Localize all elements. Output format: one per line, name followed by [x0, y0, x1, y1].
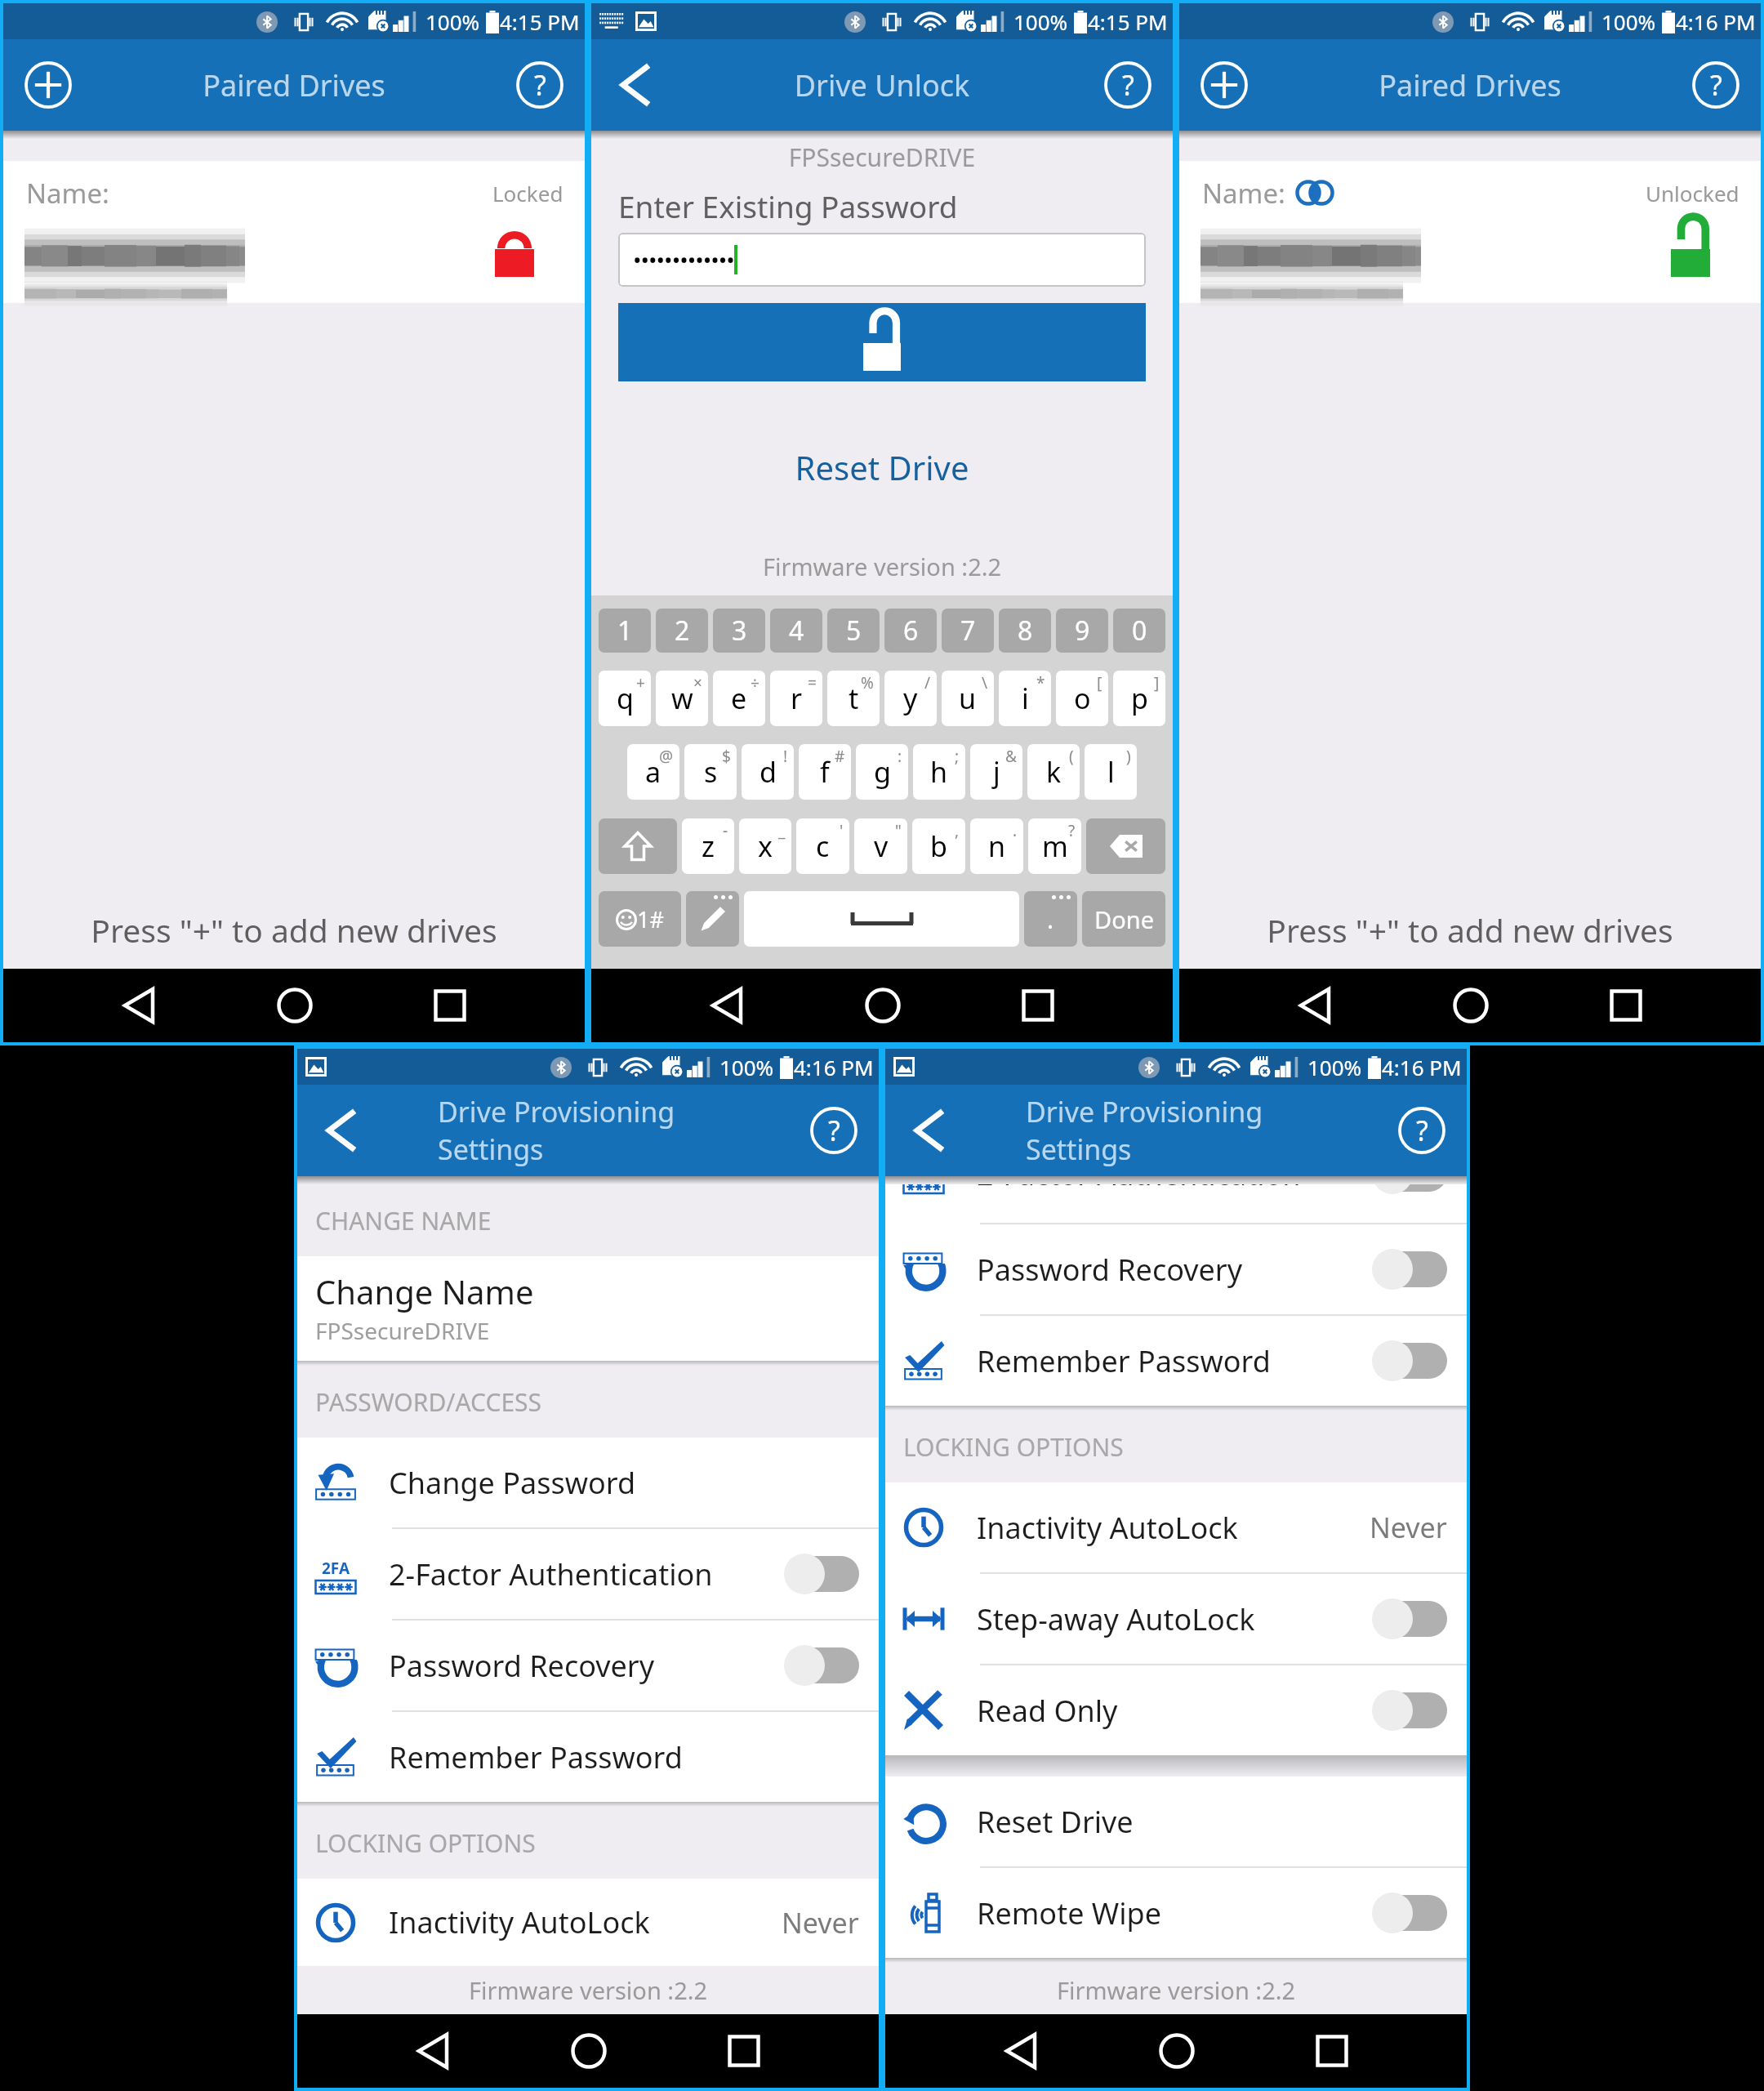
button[interactable]: Password Recovery [297, 1621, 879, 1712]
button[interactable]: Back [902, 1102, 959, 1159]
button[interactable]: 2 [656, 609, 708, 653]
button[interactable]: a [627, 744, 679, 800]
button[interactable]: Remember Password [885, 1316, 1467, 1406]
button[interactable]: Remember Password [297, 1712, 879, 1802]
button[interactable]: Back [94, 969, 184, 1042]
staticText: + [636, 672, 645, 693]
button[interactable]: Help [1687, 56, 1744, 114]
staticText: ' [840, 820, 844, 841]
staticText: s [704, 753, 718, 791]
button[interactable]: Inactivity AutoLock [885, 1482, 1467, 1574]
staticText: Locked [492, 179, 563, 207]
button[interactable]: 1# [599, 891, 681, 947]
button[interactable]: Backspace [1086, 818, 1165, 874]
button[interactable]: e [713, 671, 765, 726]
button[interactable]: Reset Drive [591, 445, 1173, 489]
staticText: 1# [637, 904, 664, 934]
button[interactable]: o [1056, 671, 1108, 726]
button[interactable]: Read Only [885, 1665, 1467, 1755]
button[interactable]: z [682, 818, 734, 874]
staticText: LOCKING OPTIONS [903, 1430, 1124, 1464]
button[interactable]: Back [608, 56, 665, 114]
button[interactable]: Step-away AutoLock [885, 1574, 1467, 1665]
button[interactable]: Recents [1581, 969, 1671, 1042]
button[interactable]: n [970, 818, 1023, 874]
button[interactable]: 4 [770, 609, 822, 653]
button[interactable]: Help [1099, 56, 1156, 114]
staticText: 5 [846, 613, 862, 649]
button[interactable]: Back [314, 1102, 371, 1159]
button[interactable]: Remote Wipe [885, 1868, 1467, 1958]
button[interactable]: Recents [405, 969, 495, 1042]
button[interactable]: 0 [1113, 609, 1165, 653]
button[interactable]: h [913, 744, 965, 800]
button[interactable]: Home [1426, 969, 1516, 1042]
button[interactable]: k [1027, 744, 1080, 800]
button[interactable]: Password Recovery [885, 1224, 1467, 1316]
button[interactable]: Home [544, 2014, 634, 2088]
button[interactable]: 2FA [297, 1529, 879, 1621]
button[interactable]: s [684, 744, 737, 800]
staticText: Remember Password [977, 1341, 1271, 1381]
staticText: Inactivity AutoLock [977, 1508, 1238, 1548]
button[interactable]: Space [744, 891, 1019, 947]
button[interactable]: 7 [942, 609, 994, 653]
button[interactable]: Back [388, 2014, 478, 2088]
button[interactable]: Change Name [297, 1256, 879, 1361]
button[interactable]: Back [976, 2014, 1066, 2088]
button[interactable]: m [1028, 818, 1081, 874]
button[interactable]: Recents [993, 969, 1083, 1042]
button[interactable]: . [1024, 891, 1077, 947]
button[interactable]: 6 [884, 609, 937, 653]
button[interactable]: Back [1270, 969, 1360, 1042]
button[interactable]: g [856, 744, 908, 800]
staticText: r [791, 680, 803, 717]
button[interactable]: f [799, 744, 851, 800]
button[interactable]: i [999, 671, 1051, 726]
button[interactable]: Recents [699, 2014, 789, 2088]
button[interactable]: x [739, 818, 791, 874]
button[interactable]: b [912, 818, 965, 874]
button[interactable]: j [970, 744, 1022, 800]
button[interactable]: Add drive [20, 56, 77, 114]
button[interactable]: r [770, 671, 822, 726]
button[interactable]: d [742, 744, 794, 800]
staticText: Press "+" to add new drives [1179, 908, 1761, 952]
button[interactable]: Shift [599, 818, 677, 874]
button[interactable]: Handwriting [686, 891, 739, 947]
button[interactable]: c [796, 818, 849, 874]
button[interactable]: Help [1393, 1102, 1450, 1159]
button[interactable]: p [1113, 671, 1165, 726]
button[interactable]: Change Password [297, 1438, 879, 1529]
button[interactable]: Home [250, 969, 340, 1042]
button[interactable]: Back [682, 969, 772, 1042]
button[interactable]: Home [1132, 2014, 1222, 2088]
button[interactable]: Inactivity AutoLock [297, 1879, 879, 1966]
button[interactable]: y [884, 671, 937, 726]
button[interactable]: Add drive [1196, 56, 1253, 114]
button[interactable]: Help [805, 1102, 862, 1159]
button[interactable]: w [656, 671, 708, 726]
button[interactable]: t [827, 671, 880, 726]
button[interactable]: Name: [3, 161, 585, 303]
staticText: a [645, 753, 661, 791]
staticText: / [924, 672, 931, 693]
button[interactable]: v [854, 818, 907, 874]
button[interactable]: ••••••••••••• [618, 233, 1146, 287]
button[interactable]: Home [838, 969, 928, 1042]
button[interactable]: 5 [827, 609, 880, 653]
button[interactable]: 8 [999, 609, 1051, 653]
button[interactable]: Unlock [618, 303, 1146, 381]
button[interactable]: 1 [599, 609, 651, 653]
button[interactable]: Recents [1287, 2014, 1377, 2088]
button[interactable]: q [599, 671, 651, 726]
button[interactable]: l [1085, 744, 1137, 800]
button[interactable]: Help [511, 56, 568, 114]
button[interactable]: Done [1082, 891, 1165, 947]
button[interactable]: 3 [713, 609, 765, 653]
button[interactable]: Reset Drive [885, 1777, 1467, 1868]
button[interactable]: Name: [1179, 161, 1761, 303]
button[interactable]: 9 [1056, 609, 1108, 653]
staticText: 100% [1013, 7, 1068, 36]
button[interactable]: u [942, 671, 994, 726]
